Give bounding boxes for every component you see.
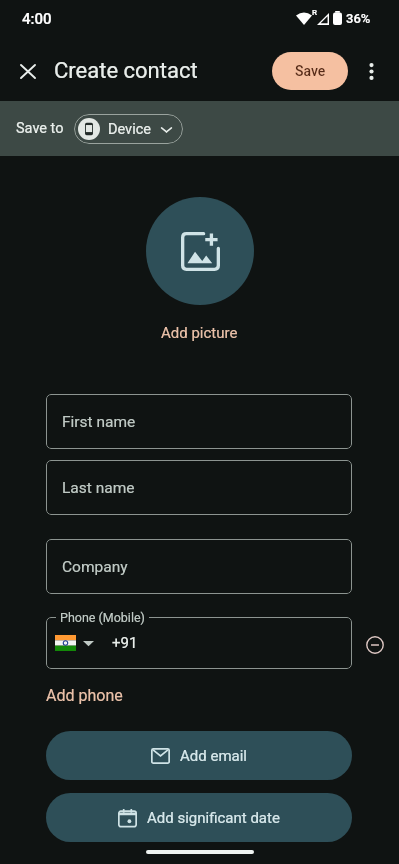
button[interactable]: Remove phone: [360, 630, 390, 660]
button[interactable]: First name: [46, 394, 352, 449]
staticText: Add email: [180, 747, 247, 765]
button[interactable]: Add picture: [161, 324, 238, 342]
staticText: Last name: [62, 479, 135, 497]
button[interactable]: Add picture: [146, 197, 254, 305]
button[interactable]: +91: [46, 617, 352, 669]
button[interactable]: Add phone: [46, 684, 123, 707]
staticText: Add significant date: [147, 809, 280, 827]
button[interactable]: More options: [355, 55, 387, 87]
button[interactable]: Company: [46, 539, 352, 594]
staticText: +91: [112, 634, 138, 652]
staticText: 36%: [346, 11, 371, 26]
staticText: Create contact: [54, 58, 198, 84]
staticText: Save: [295, 63, 326, 79]
staticText: R: [312, 8, 318, 17]
staticText: First name: [62, 413, 136, 431]
button[interactable]: Last name: [46, 460, 352, 515]
button[interactable]: Add significant date: [46, 793, 352, 842]
button[interactable]: Close: [12, 55, 44, 87]
button[interactable]: Device: [74, 114, 183, 144]
staticText: 4:00: [22, 10, 52, 28]
staticText: Company: [62, 558, 128, 576]
button[interactable]: Save: [272, 52, 348, 90]
staticText: Phone (Mobile): [60, 610, 145, 625]
staticText: Save to: [16, 120, 64, 137]
button[interactable]: Add email: [46, 731, 352, 780]
staticText: Device: [108, 121, 151, 138]
